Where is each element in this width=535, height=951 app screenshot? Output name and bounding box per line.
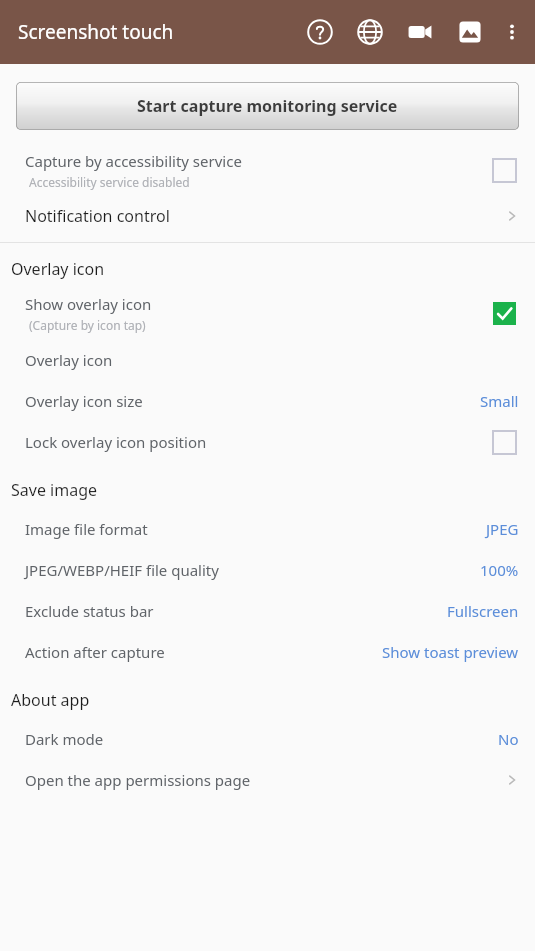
button[interactable]: Gallery bbox=[451, 13, 489, 51]
staticText: Show toast preview bbox=[382, 642, 519, 662]
button[interactable]: Record video bbox=[401, 13, 439, 51]
staticText: Open the app permissions page bbox=[25, 770, 505, 790]
button[interactable]: Notification control bbox=[0, 196, 535, 236]
staticText: 100% bbox=[480, 560, 519, 580]
staticText: Fullscreen bbox=[447, 601, 519, 621]
button[interactable]: JPEG/WEBP/HEIF file quality bbox=[0, 549, 535, 590]
staticText: Action after capture bbox=[25, 642, 382, 662]
button[interactable]: Exclude status bar bbox=[0, 590, 535, 631]
staticText: Overlay icon size bbox=[25, 391, 480, 411]
staticText: Accessibility service disabled bbox=[29, 174, 190, 190]
button[interactable]: Help bbox=[301, 13, 339, 51]
staticText: JPEG bbox=[486, 519, 519, 539]
staticText: No bbox=[498, 729, 519, 749]
staticText: About app bbox=[11, 689, 90, 711]
button[interactable]: Open the app permissions page bbox=[0, 759, 535, 800]
staticText: Notification control bbox=[25, 205, 505, 227]
button[interactable]: More options bbox=[493, 13, 531, 51]
staticText: Screenshot touch bbox=[18, 19, 174, 45]
staticText: Capture by accessibility service bbox=[25, 151, 242, 171]
button[interactable]: Image file format bbox=[0, 508, 535, 549]
staticText: Lock overlay icon position bbox=[25, 432, 489, 452]
button[interactable]: Unchecked bbox=[489, 427, 519, 457]
staticText: (Capture by icon tap) bbox=[29, 317, 146, 333]
staticText: Start capture monitoring service bbox=[137, 95, 398, 117]
staticText: Overlay icon bbox=[11, 258, 105, 280]
staticText: Save image bbox=[11, 479, 98, 501]
staticText: Image file format bbox=[25, 519, 486, 539]
button[interactable]: Capture by accessibility service bbox=[0, 144, 535, 196]
button[interactable]: Action after capture bbox=[0, 631, 535, 672]
staticText: Show overlay icon bbox=[25, 294, 152, 314]
button[interactable]: Unchecked bbox=[489, 155, 519, 185]
button[interactable]: Checked bbox=[489, 298, 519, 328]
button[interactable]: Overlay icon bbox=[0, 339, 535, 380]
button[interactable]: Language bbox=[351, 13, 389, 51]
button[interactable]: Dark mode bbox=[0, 718, 535, 759]
staticText: Small bbox=[480, 391, 519, 411]
button[interactable]: Show overlay icon bbox=[0, 287, 535, 339]
button[interactable]: Start capture monitoring service bbox=[16, 82, 519, 130]
staticText: Overlay icon bbox=[25, 350, 519, 370]
staticText: JPEG/WEBP/HEIF file quality bbox=[25, 560, 480, 580]
button[interactable]: Lock overlay icon position bbox=[0, 421, 535, 462]
button[interactable]: Overlay icon size bbox=[0, 380, 535, 421]
staticText: Exclude status bar bbox=[25, 601, 447, 621]
staticText: Dark mode bbox=[25, 729, 498, 749]
